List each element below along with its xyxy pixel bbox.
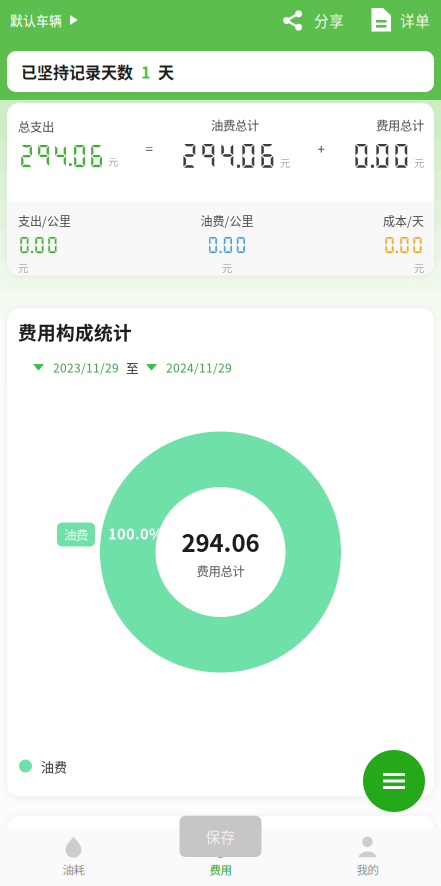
staticText: 100.0% (108, 522, 163, 544)
staticText: 元 (414, 155, 424, 170)
staticText: 默认车辆 (10, 11, 62, 29)
staticText: 元 (222, 260, 232, 275)
staticText: 费用总计 (376, 116, 424, 134)
staticText: 分享 (314, 9, 344, 31)
button[interactable]: 2023/11/29 (33, 359, 119, 376)
staticText: 油费 (64, 525, 88, 543)
staticText: 1 (133, 60, 158, 83)
staticText: 保存 (205, 826, 235, 847)
button[interactable]: 详单 (347, 2, 441, 37)
button[interactable]: 菜单 (363, 750, 425, 812)
staticText: 294.06 (181, 524, 259, 559)
button[interactable]: 费用 (147, 830, 294, 884)
staticText: 0.00 (352, 140, 411, 170)
staticText: 元 (280, 155, 290, 170)
staticText: 支出/公里 (18, 212, 71, 229)
staticText: 元 (108, 154, 118, 169)
staticText: 294.06 (180, 140, 277, 170)
staticText: 0.00 (206, 234, 247, 255)
button[interactable]: 2024/11/29 (146, 359, 232, 376)
staticText: 0.00 (383, 234, 424, 255)
staticText: 详单 (400, 9, 430, 31)
staticText: 成本/天 (383, 212, 424, 229)
button[interactable]: 油耗 (0, 830, 147, 884)
button[interactable]: 已坚持记录天数 (0, 51, 441, 92)
staticText: 2024/11/29 (166, 359, 232, 376)
staticText: 294.06 (18, 141, 105, 169)
staticText: 油费/公里 (200, 212, 253, 229)
staticText: = (145, 138, 152, 158)
staticText: + (317, 138, 324, 158)
staticText: 费用构成统计 (18, 318, 132, 345)
staticText: 费用 (209, 861, 231, 878)
staticText: 至 (126, 358, 139, 376)
staticText: 元 (18, 260, 28, 275)
staticText: 油费总计 (211, 116, 259, 134)
staticText: 油耗 (62, 861, 84, 878)
staticText: 0.00 (18, 234, 59, 255)
staticText: 我的 (356, 861, 378, 878)
staticText: 天 (158, 60, 174, 83)
staticText: 已坚持记录天数 (21, 60, 133, 83)
staticText: 2023/11/29 (53, 359, 119, 376)
button[interactable]: 我的 (294, 830, 441, 884)
staticText: 油费 (41, 756, 67, 775)
button[interactable]: 默认车辆 (0, 4, 86, 36)
staticText: 总支出 (18, 117, 54, 135)
staticText: 费用总计 (196, 562, 244, 580)
button[interactable]: 分享 (279, 4, 347, 36)
staticText: 元 (414, 260, 424, 275)
